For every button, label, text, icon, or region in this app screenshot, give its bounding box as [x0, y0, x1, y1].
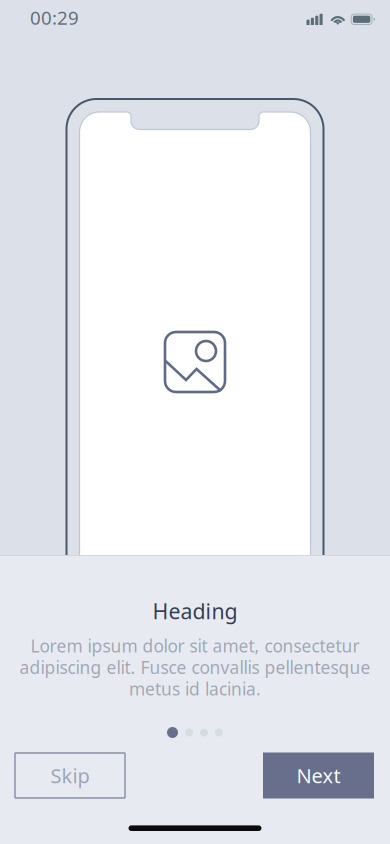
button[interactable]: Next: [263, 752, 374, 798]
staticText: metus id lacinia.: [129, 677, 261, 700]
staticText: 00:29: [30, 5, 79, 30]
staticText: Skip: [50, 762, 89, 789]
staticText: Lorem ipsum dolor sit amet, consectetur: [30, 634, 359, 657]
staticText: Heading: [152, 597, 237, 625]
staticText: adipiscing elit. Fusce convallis pellent…: [19, 656, 370, 679]
staticText: Next: [296, 762, 340, 789]
button[interactable]: Skip: [15, 753, 125, 798]
